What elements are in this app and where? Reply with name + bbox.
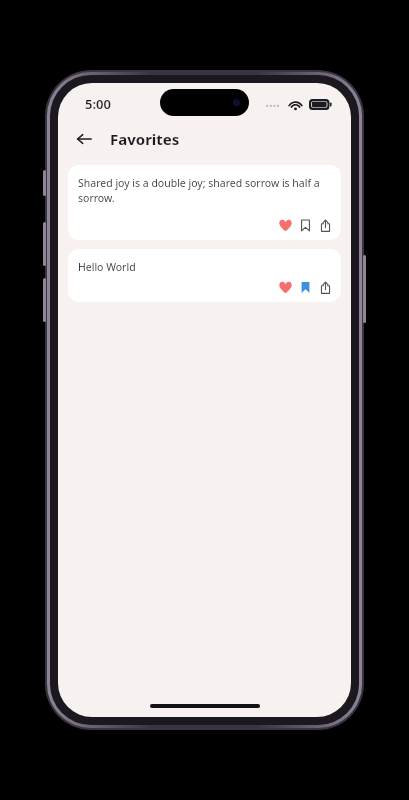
staticText: Favorites: [110, 129, 180, 149]
button[interactable]: Share: [315, 215, 335, 235]
staticText: Shared joy is a double joy; shared sorro…: [78, 176, 329, 205]
staticText: 5:00: [85, 95, 111, 113]
button[interactable]: Hello World: [68, 249, 341, 302]
button[interactable]: Shared joy is a double joy; shared sorro…: [68, 165, 341, 240]
button[interactable]: Favorite: [275, 215, 295, 235]
staticText: Hello World: [78, 260, 136, 274]
button[interactable]: Bookmark: [295, 277, 315, 297]
button[interactable]: Bookmark: [295, 215, 315, 235]
button[interactable]: Back: [67, 122, 101, 156]
button[interactable]: Share: [315, 277, 335, 297]
button[interactable]: Favorite: [275, 277, 295, 297]
